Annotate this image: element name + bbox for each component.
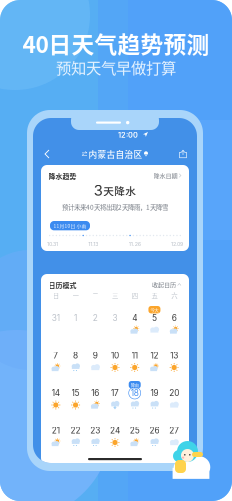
staticText: 10 <box>111 350 119 360</box>
staticText: 二 <box>92 291 98 300</box>
staticText: 11 <box>132 350 138 360</box>
button[interactable]: 2 <box>85 305 105 339</box>
staticText: 降水趋势 <box>48 171 76 181</box>
staticText: 6 <box>172 313 177 323</box>
button[interactable]: 18 <box>125 380 145 414</box>
button[interactable]: Share <box>174 146 192 162</box>
staticText: 预知天气早做打算 <box>56 56 176 78</box>
button[interactable]: Back <box>38 146 56 162</box>
staticText: 预计未来40天将出现2天降雨，1天降雪 <box>62 202 168 212</box>
button[interactable]: 10 <box>105 342 125 376</box>
staticText: 22 <box>71 425 81 435</box>
staticText: 天降水 <box>103 183 136 198</box>
staticText: 12:00 <box>118 131 138 139</box>
button[interactable]: 7 <box>46 342 66 376</box>
button[interactable]: 4 <box>125 305 145 339</box>
button[interactable]: 16 <box>85 380 105 414</box>
staticText: 1 <box>74 313 77 323</box>
staticText: 20 <box>169 388 179 398</box>
staticText: 9 <box>93 350 98 360</box>
staticText: 四 <box>132 291 138 300</box>
staticText: 18 <box>131 388 139 398</box>
staticText: 5 <box>152 313 157 323</box>
button[interactable]: 3 <box>105 305 125 339</box>
staticText: 降雨 <box>131 382 139 388</box>
button[interactable]: 降水日期 <box>135 171 181 180</box>
button[interactable]: 收起日历 <box>135 280 181 289</box>
staticText: 11月10日 小雨 <box>53 222 86 229</box>
staticText: 26 <box>149 425 159 435</box>
button[interactable]: 6 <box>164 305 184 339</box>
staticText: 一 <box>73 291 79 300</box>
button[interactable]: 17 <box>105 380 125 414</box>
staticText: 16 <box>91 388 99 398</box>
button[interactable]: 1 <box>66 305 85 339</box>
staticText: 11.13 <box>88 241 98 247</box>
button[interactable]: 25 <box>125 417 145 451</box>
staticText: 19 <box>150 388 158 398</box>
staticText: 7 <box>53 350 58 360</box>
staticText: 日 <box>53 291 59 300</box>
staticText: 12 <box>150 350 158 360</box>
button[interactable]: 21 <box>46 417 66 451</box>
staticText: 4 <box>132 313 137 323</box>
button[interactable]: 27 <box>164 417 184 451</box>
staticText: 21 <box>52 425 60 435</box>
staticText: 25 <box>130 425 140 435</box>
staticText: 40日天气趋势预测 <box>22 27 209 59</box>
button[interactable]: 24 <box>105 417 125 451</box>
staticText: 15 <box>72 388 80 398</box>
staticText: 日历模式 <box>48 280 76 290</box>
staticText: 27 <box>169 425 179 435</box>
staticText: 8 <box>73 350 78 360</box>
staticText: 14 <box>52 388 60 398</box>
button[interactable]: 15 <box>66 380 85 414</box>
staticText: 五 <box>151 291 157 300</box>
staticText: 12.09 <box>171 241 183 247</box>
staticText: 11.26 <box>129 241 141 247</box>
button[interactable]: 8 <box>66 342 85 376</box>
staticText: 24 <box>110 425 120 435</box>
button[interactable]: 26 <box>145 417 164 451</box>
button[interactable]: 19 <box>145 380 164 414</box>
staticText: 内蒙古自治区 <box>88 148 142 160</box>
button[interactable]: 23 <box>85 417 105 451</box>
button[interactable]: 9 <box>85 342 105 376</box>
button[interactable]: 12 <box>145 342 164 376</box>
button[interactable]: 22 <box>66 417 85 451</box>
staticText: 23 <box>90 425 100 435</box>
button[interactable]: 14 <box>46 380 66 414</box>
staticText: 31 <box>52 313 60 323</box>
staticText: 2 <box>93 313 98 323</box>
button[interactable]: 11 <box>125 342 145 376</box>
staticText: 收起日历 <box>152 280 176 289</box>
button[interactable]: 20 <box>164 380 184 414</box>
staticText: 13 <box>170 350 178 360</box>
button[interactable]: 5 <box>145 305 164 339</box>
staticText: 3 <box>112 313 117 323</box>
staticText: 10.31 <box>47 241 58 247</box>
staticText: 3 <box>94 182 103 199</box>
staticText: 17 <box>111 388 119 398</box>
staticText: 降水日期 <box>153 171 177 180</box>
staticText: 今天 <box>150 307 158 313</box>
button[interactable]: 31 <box>46 305 66 339</box>
staticText: 三 <box>112 291 118 300</box>
staticText: 六 <box>171 291 177 300</box>
button[interactable]: 13 <box>164 342 184 376</box>
